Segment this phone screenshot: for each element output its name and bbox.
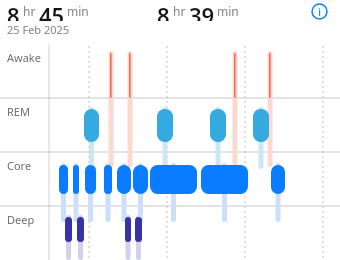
staticText: Awake xyxy=(7,50,41,65)
staticText: 39 xyxy=(189,0,215,21)
button[interactable]: Info xyxy=(311,3,328,20)
staticText: 45 xyxy=(39,0,65,21)
staticText: 8 xyxy=(157,0,170,21)
staticText: hr xyxy=(23,3,36,19)
staticText: Core xyxy=(7,158,32,173)
staticText: hr xyxy=(173,3,186,19)
staticText: i xyxy=(318,5,321,19)
staticText: min xyxy=(217,3,239,19)
staticText: min xyxy=(67,3,89,19)
button[interactable] xyxy=(0,44,340,260)
staticText: 25 Feb 2025 xyxy=(7,22,70,37)
staticText: Deep xyxy=(7,212,35,227)
staticText: 8 xyxy=(7,0,20,21)
staticText: REM xyxy=(7,104,30,119)
